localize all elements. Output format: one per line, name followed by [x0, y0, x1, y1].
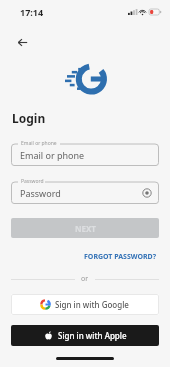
staticText: Login — [12, 110, 46, 126]
button[interactable]: Sign in with Google — [11, 294, 159, 315]
staticText: Email or phone — [21, 140, 57, 147]
staticText: Password — [21, 178, 44, 185]
button[interactable]: Back — [8, 28, 36, 56]
staticText: NEXT — [75, 223, 96, 234]
staticText: or — [81, 274, 89, 284]
staticText: FORGOT PASSWORD? — [84, 252, 157, 262]
staticText: Sign in with Apple — [58, 330, 127, 341]
button[interactable]: Sign in with Apple — [11, 325, 159, 346]
button[interactable]: NEXT — [11, 218, 159, 238]
button[interactable]: Show password — [140, 186, 154, 200]
staticText: 17:14 — [20, 6, 44, 18]
button[interactable]: FORGOT PASSWORD? — [82, 250, 159, 264]
staticText: Email or phone — [20, 149, 85, 161]
staticText: Sign in with Google — [55, 299, 129, 310]
staticText: Password — [20, 187, 61, 199]
